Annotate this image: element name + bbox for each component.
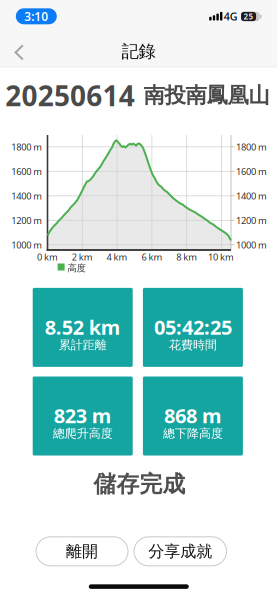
staticText: 2 (5, 77, 21, 114)
button[interactable]: 分享成就 (134, 537, 227, 566)
button[interactable]: 離開 (36, 537, 128, 566)
staticText: 4G (224, 9, 238, 23)
staticText: 3:10 (24, 8, 48, 24)
staticText: 南投南鳳凰山 (143, 82, 269, 109)
staticText: 花費時間 (169, 337, 217, 352)
staticText: 離開 (66, 541, 98, 561)
staticText: 823 m (54, 402, 112, 429)
staticText: 高度 (67, 262, 85, 274)
staticText: 1600 m (236, 165, 267, 177)
staticText: 1000 m (236, 239, 267, 251)
staticText: 1600 m (11, 165, 42, 177)
staticText: 總下降高度 (163, 426, 223, 441)
staticText: 1000 m (11, 239, 42, 251)
staticText: 總爬升高度 (53, 426, 113, 441)
staticText: 10 km (208, 251, 234, 263)
staticText: 記錄 (121, 41, 155, 62)
staticText: 1 (102, 77, 118, 114)
staticText: 儲存完成 (93, 470, 185, 498)
staticText: 2 (38, 77, 54, 114)
staticText: 4 km (107, 251, 128, 263)
staticText: 1800 m (11, 141, 42, 153)
staticText: 8.52 km (45, 314, 121, 340)
staticText: 5 (54, 77, 70, 114)
staticText: 6 km (141, 251, 162, 263)
staticText: 累計距離 (59, 337, 107, 352)
staticText: 0 (70, 77, 86, 114)
staticText: 4 (119, 77, 135, 114)
staticText: 1800 m (236, 141, 267, 153)
staticText: 8 km (176, 251, 197, 263)
staticText: 1200 m (11, 214, 42, 226)
staticText: 25 (244, 11, 254, 22)
staticText: 0 (21, 77, 37, 114)
staticText: 1200 m (236, 214, 267, 226)
staticText: 0 km (37, 251, 58, 263)
staticText: 1400 m (11, 190, 42, 202)
staticText: 05:42:25 (154, 314, 232, 340)
staticText: 868 m (164, 402, 222, 429)
button[interactable]: Back (9, 42, 29, 62)
staticText: 1400 m (236, 190, 267, 202)
staticText: 2 km (72, 251, 93, 263)
staticText: 分享成就 (148, 541, 212, 561)
staticText: 6 (86, 77, 102, 114)
